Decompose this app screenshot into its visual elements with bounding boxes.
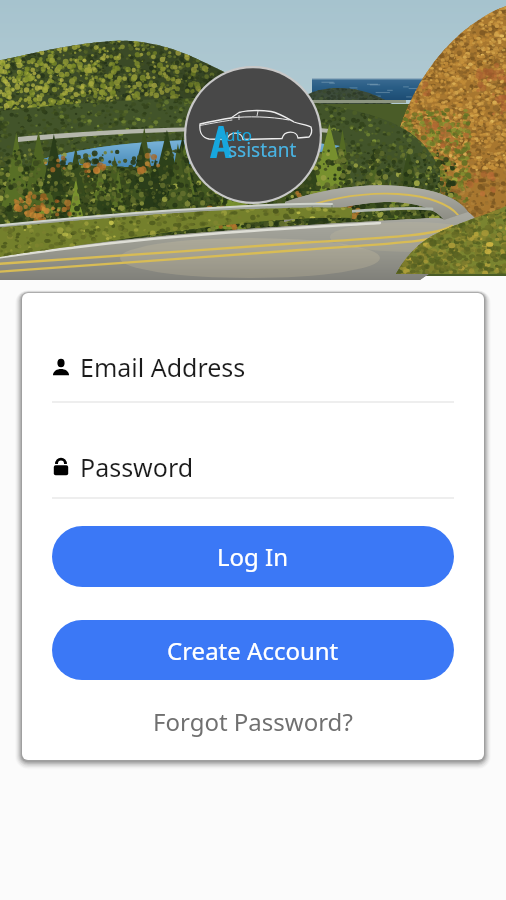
staticText: Log In [217, 540, 289, 573]
button[interactable]: Create Account [52, 620, 454, 680]
staticText: uto [225, 123, 252, 146]
button[interactable]: Password [52, 450, 454, 499]
button[interactable]: Email Address [52, 350, 454, 403]
staticText: Create Account [167, 634, 339, 667]
staticText: Forgot Password? [153, 705, 353, 738]
button[interactable]: Log In [52, 526, 454, 587]
staticText: Password [80, 450, 194, 484]
staticText: ssistant [228, 137, 297, 163]
staticText: Email Address [80, 350, 246, 384]
button[interactable]: Forgot Password? [52, 705, 454, 738]
